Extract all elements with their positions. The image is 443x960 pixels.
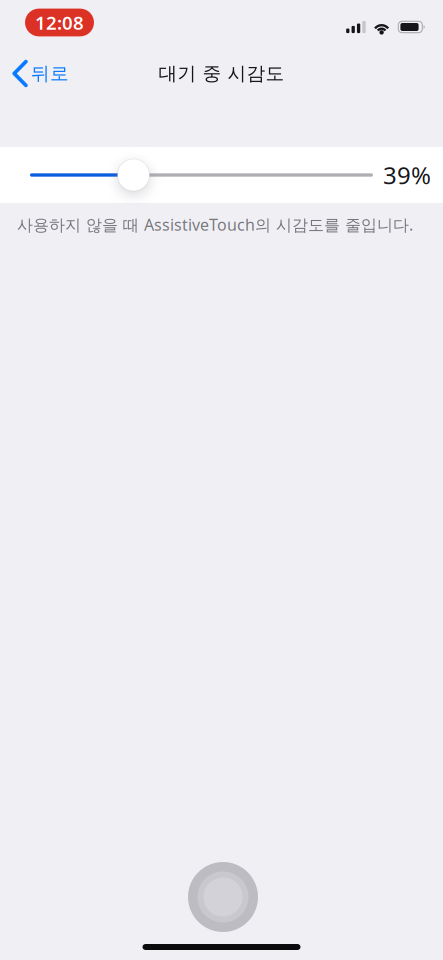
button[interactable]: 뒤로 [0, 50, 77, 96]
staticText: 12:08 [35, 10, 84, 35]
staticText: 대기 중 시감도 [158, 62, 284, 85]
staticText: 사용하지 않을 때 AssistiveTouch의 시감도를 줄입니다. [17, 214, 413, 235]
staticText: 39% [383, 159, 431, 191]
staticText: 뒤로 [31, 62, 69, 85]
button[interactable]: AssistiveTouch [188, 862, 258, 932]
